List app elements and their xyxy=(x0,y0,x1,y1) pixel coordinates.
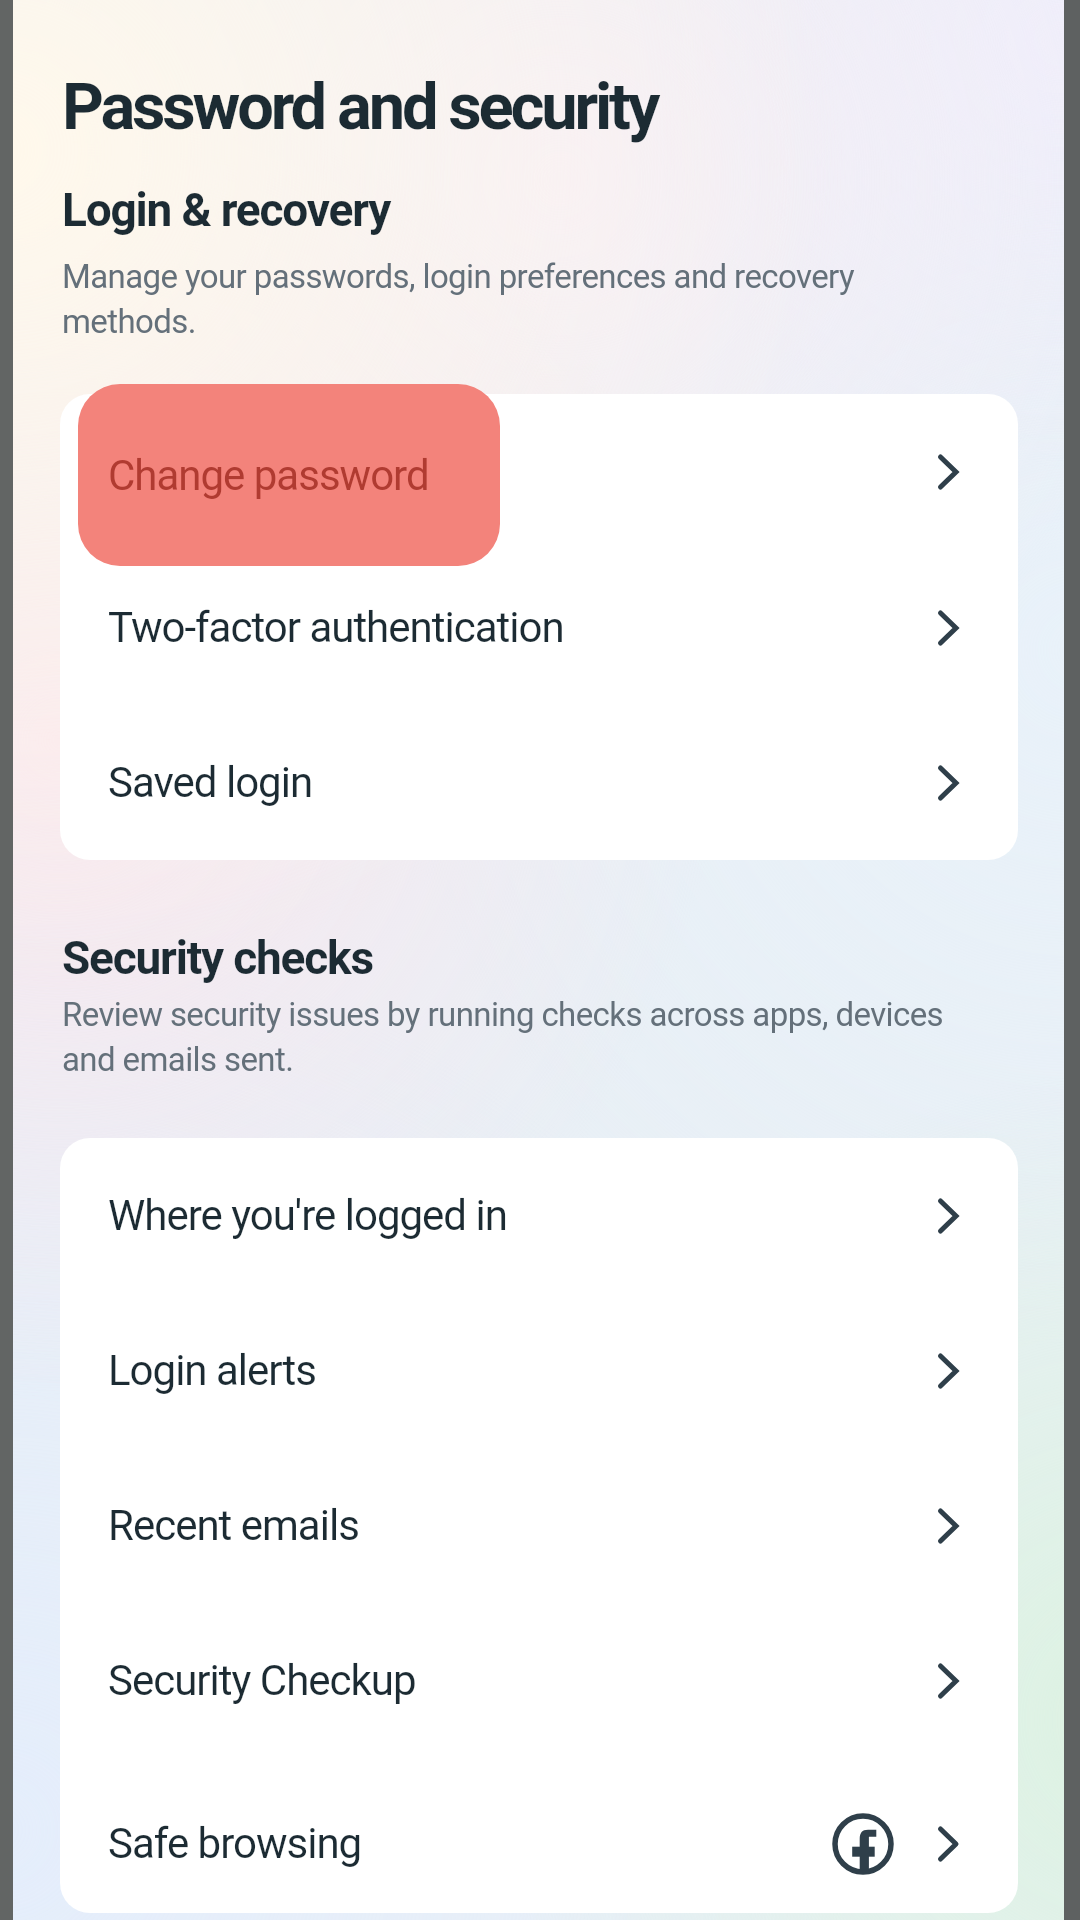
button[interactable]: Two-factor authentication xyxy=(60,550,1018,705)
button[interactable]: Change password xyxy=(60,394,1018,550)
button[interactable]: Safe browsing xyxy=(60,1766,1018,1913)
staticText: Password and security xyxy=(62,69,658,145)
staticText: Recent emails xyxy=(108,1501,359,1550)
staticText: Safe browsing xyxy=(108,1819,362,1868)
staticText: Where you're logged in xyxy=(108,1191,507,1240)
staticText: Two-factor authentication xyxy=(108,603,564,652)
staticText: Review security issues by running checks… xyxy=(62,995,944,1079)
staticText: Manage your passwords, login preferences… xyxy=(62,257,854,341)
button[interactable]: Change password xyxy=(78,384,500,566)
button[interactable]: Recent emails xyxy=(60,1448,1018,1603)
button[interactable]: Saved login xyxy=(60,705,1018,860)
button[interactable]: Where you're logged in xyxy=(60,1138,1018,1293)
button[interactable]: Security Checkup xyxy=(60,1603,1018,1758)
staticText: Login & recovery xyxy=(62,183,391,237)
button[interactable]: Login alerts xyxy=(60,1293,1018,1448)
staticText: Login alerts xyxy=(108,1346,316,1395)
staticText: Change password xyxy=(108,448,429,497)
staticText: Security Checkup xyxy=(108,1656,416,1705)
staticText: Saved login xyxy=(108,758,313,807)
staticText: Change password xyxy=(108,451,429,500)
staticText: Security checks xyxy=(62,931,373,985)
